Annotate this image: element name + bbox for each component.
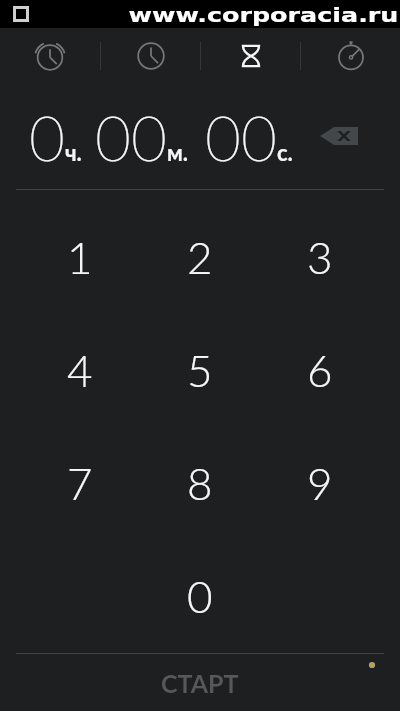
staticText: 1	[67, 231, 93, 284]
button[interactable]: 1	[20, 201, 140, 314]
staticText: 4	[67, 344, 93, 397]
staticText: 8	[187, 457, 213, 510]
button[interactable]: 7	[20, 427, 140, 540]
staticText: 5	[187, 344, 213, 397]
staticText: 6	[307, 344, 333, 397]
button[interactable]: Stopwatch	[301, 28, 400, 84]
button[interactable]: СТАРТ	[0, 654, 400, 711]
staticText: 9	[307, 457, 333, 510]
button[interactable]: Clock	[101, 28, 200, 84]
staticText: 00	[95, 100, 167, 174]
staticText: 0	[29, 100, 65, 174]
button[interactable]: 8	[140, 427, 260, 540]
button[interactable]: 0	[140, 540, 260, 653]
staticText: 0	[187, 570, 213, 623]
staticText: www.corporacia.ru	[128, 3, 399, 26]
staticText: СТАРТ	[161, 668, 239, 698]
staticText: 2	[187, 231, 213, 284]
button[interactable]: 9	[260, 427, 380, 540]
button[interactable]: Backspace	[315, 120, 363, 152]
staticText: ч.	[65, 139, 82, 165]
staticText: с.	[277, 139, 293, 165]
button[interactable]: 4	[20, 314, 140, 427]
button[interactable]: 3	[260, 201, 380, 314]
button[interactable]: Timer	[201, 28, 300, 84]
staticText: м.	[167, 139, 188, 165]
button[interactable]: 6	[260, 314, 380, 427]
staticText: 3	[307, 231, 333, 284]
staticText: 00	[205, 100, 277, 174]
button[interactable]: 5	[140, 314, 260, 427]
button[interactable]: Alarm	[0, 28, 100, 84]
button[interactable]: 2	[140, 201, 260, 314]
staticText: 7	[67, 457, 93, 510]
